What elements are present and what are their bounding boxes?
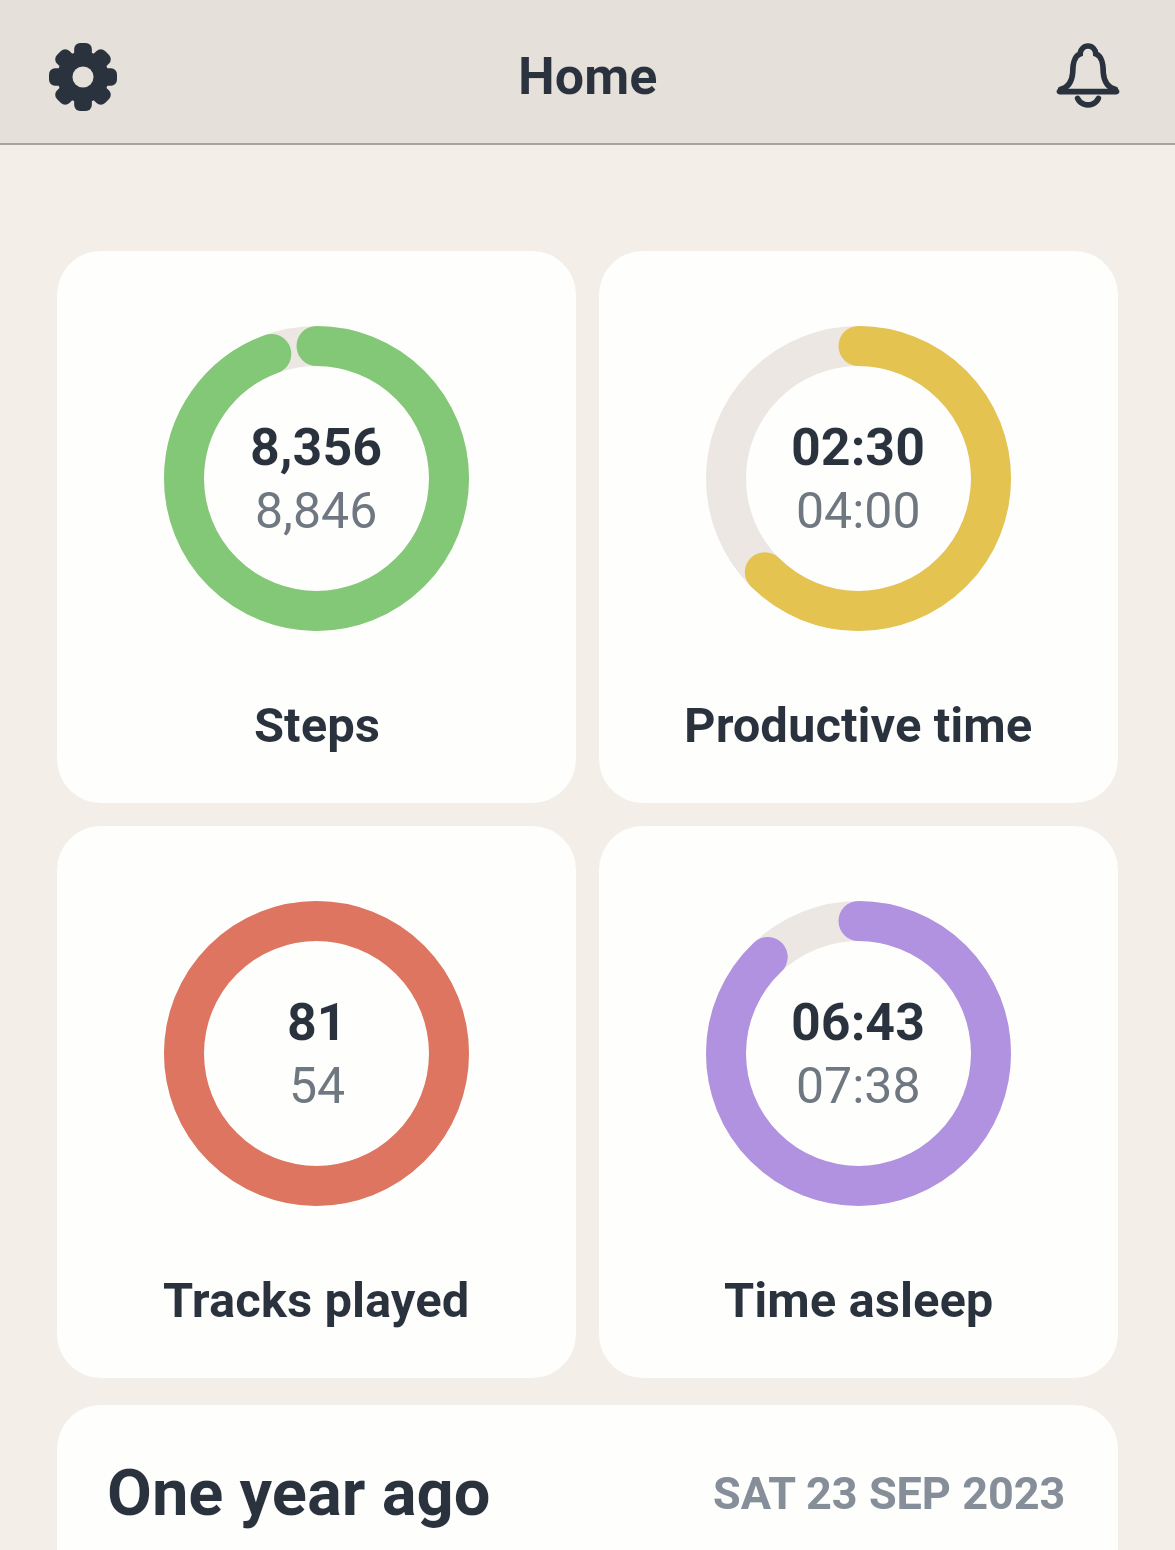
button[interactable]: 81: [57, 826, 576, 1378]
button[interactable]: [1054, 43, 1122, 111]
button[interactable]: 02:30: [599, 251, 1118, 803]
button[interactable]: One year ago: [57, 1405, 1118, 1550]
staticText: Home: [518, 46, 658, 107]
staticText: 06:43: [791, 992, 926, 1053]
staticText: 07:38: [796, 1057, 921, 1116]
staticText: 81: [287, 992, 347, 1053]
staticText: Tracks played: [163, 1272, 470, 1329]
staticText: 8,356: [250, 417, 383, 478]
button[interactable]: 8,356: [57, 251, 576, 803]
staticText: 8,846: [255, 482, 378, 541]
button[interactable]: 06:43: [599, 826, 1118, 1378]
staticText: SAT 23 SEP 2023: [713, 1467, 1066, 1520]
staticText: 04:00: [796, 482, 921, 541]
staticText: 54: [289, 1057, 346, 1116]
staticText: Productive time: [684, 697, 1033, 754]
staticText: Steps: [254, 697, 380, 754]
staticText: One year ago: [107, 1455, 491, 1531]
staticText: Time asleep: [724, 1272, 994, 1329]
button[interactable]: [49, 43, 117, 111]
staticText: 02:30: [791, 417, 926, 478]
